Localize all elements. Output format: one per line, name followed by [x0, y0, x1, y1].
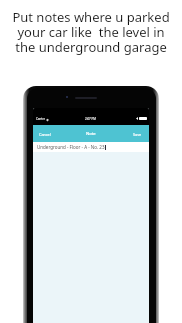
staticText: Put notes where u parked your car like t… [0, 8, 182, 56]
button[interactable]: Save [131, 130, 144, 139]
button[interactable] [33, 142, 149, 152]
staticText: Cancel [39, 132, 51, 137]
staticText: Underground - Floor - A - No. 23 [37, 144, 105, 150]
staticText: Save [133, 132, 142, 137]
staticText: Note [86, 131, 96, 137]
button[interactable]: Cancel [37, 130, 53, 139]
staticText: 2:07 PM [85, 117, 96, 121]
staticText: Carrier [36, 117, 45, 121]
